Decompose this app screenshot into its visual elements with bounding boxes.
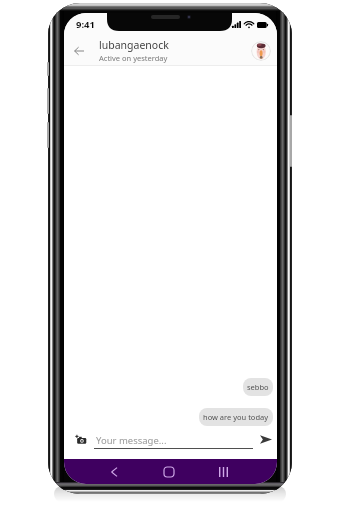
button[interactable]: Send [259, 433, 272, 446]
button[interactable]: Recent apps [196, 459, 251, 484]
button[interactable]: how are you today [199, 408, 273, 426]
staticText: Your message... [96, 434, 167, 447]
button[interactable]: Back [86, 459, 141, 484]
staticText: lubangaenock [99, 38, 169, 52]
staticText: sebbo [247, 382, 269, 392]
button[interactable]: Add photo [74, 433, 87, 446]
button[interactable]: Back [71, 43, 87, 59]
button[interactable]: Profile photo [251, 41, 271, 61]
staticText: 9:41 [76, 18, 95, 31]
button[interactable]: sebbo [243, 378, 273, 396]
staticText: how are you today [203, 412, 269, 422]
button[interactable]: Home [141, 459, 196, 484]
staticText: Active on yesterday [99, 53, 168, 63]
